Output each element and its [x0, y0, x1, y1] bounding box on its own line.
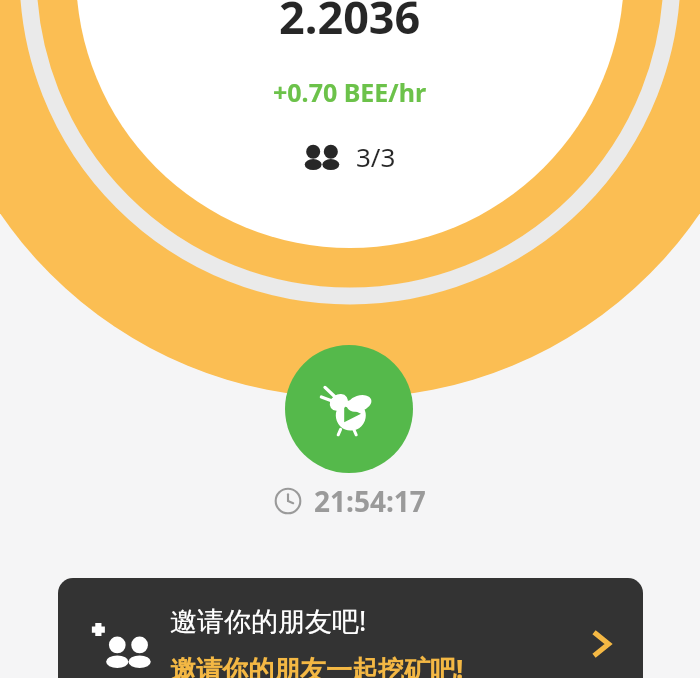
button[interactable]: 邀请你的朋友吧! [58, 578, 643, 678]
staticText: 邀请你的朋友吧! [170, 602, 367, 639]
staticText: +0.70 BEE/hr [273, 75, 427, 109]
button[interactable]: Start mining [285, 345, 413, 473]
staticText: 3/3 [356, 139, 396, 174]
staticText: 邀请你的朋友一起挖矿吧! [170, 651, 464, 678]
staticText: 21:54:17 [314, 482, 426, 520]
staticText: 2.2036 [279, 0, 421, 47]
